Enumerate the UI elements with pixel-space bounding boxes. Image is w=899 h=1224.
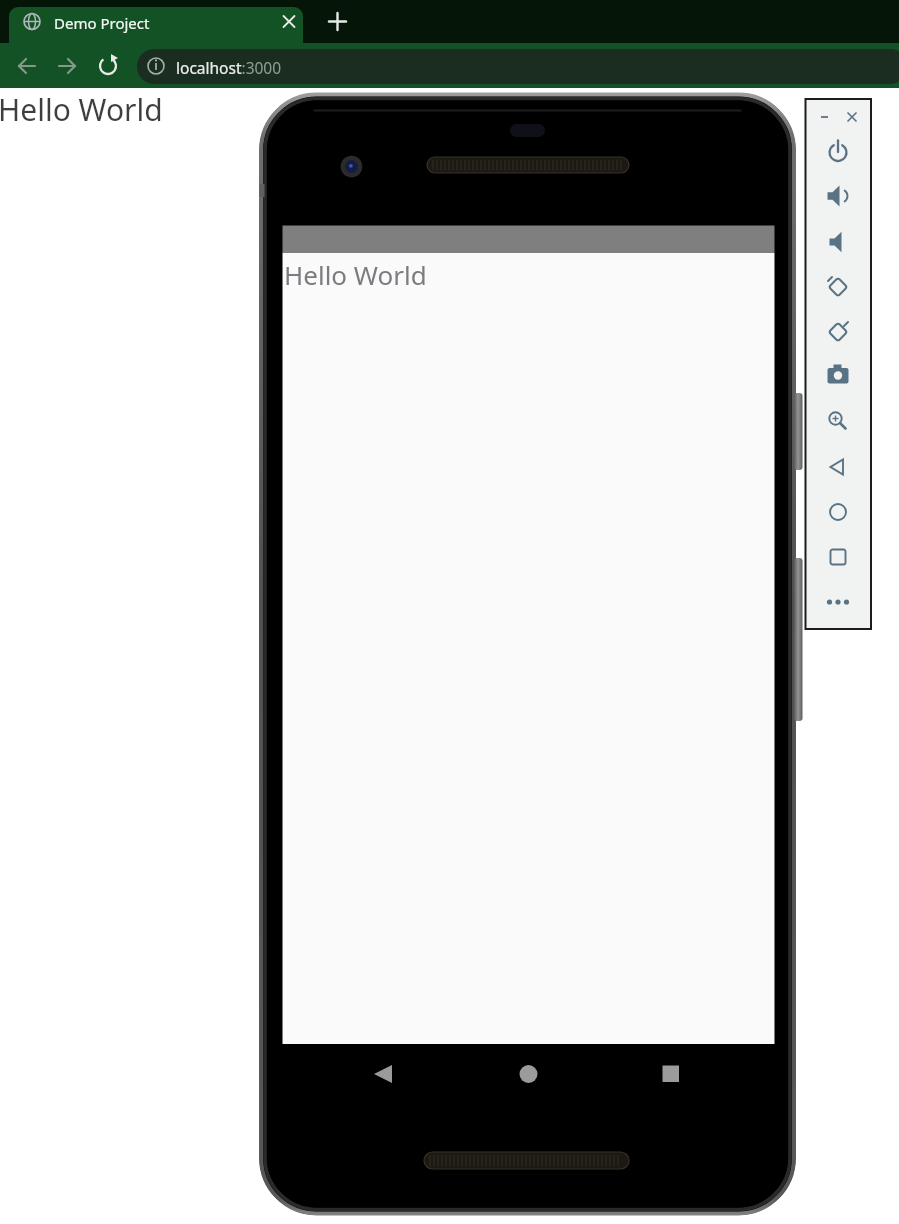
button[interactable] [820, 495, 856, 529]
button[interactable] [820, 225, 856, 259]
button[interactable] [363, 1053, 403, 1093]
button[interactable] [820, 450, 856, 484]
button[interactable] [820, 315, 856, 349]
button[interactable] [273, 6, 305, 36]
button[interactable] [842, 107, 862, 127]
button[interactable] [137, 49, 899, 84]
staticText: Demo Project [54, 13, 150, 33]
staticText: Hello World [0, 89, 163, 130]
staticText: localhost:3000 [176, 57, 282, 78]
button[interactable] [820, 585, 856, 619]
button[interactable] [820, 540, 856, 574]
button[interactable] [820, 358, 856, 392]
button[interactable] [9, 7, 303, 43]
button[interactable] [820, 179, 856, 213]
button[interactable] [820, 135, 856, 169]
button[interactable] [814, 107, 834, 127]
button[interactable] [650, 1053, 690, 1093]
button[interactable] [820, 270, 856, 304]
button[interactable] [92, 50, 124, 82]
button[interactable] [321, 6, 353, 36]
button[interactable] [820, 404, 856, 438]
button[interactable] [51, 50, 83, 82]
button[interactable] [11, 50, 43, 82]
button[interactable] [508, 1053, 548, 1093]
staticText: Hello World [284, 257, 427, 292]
